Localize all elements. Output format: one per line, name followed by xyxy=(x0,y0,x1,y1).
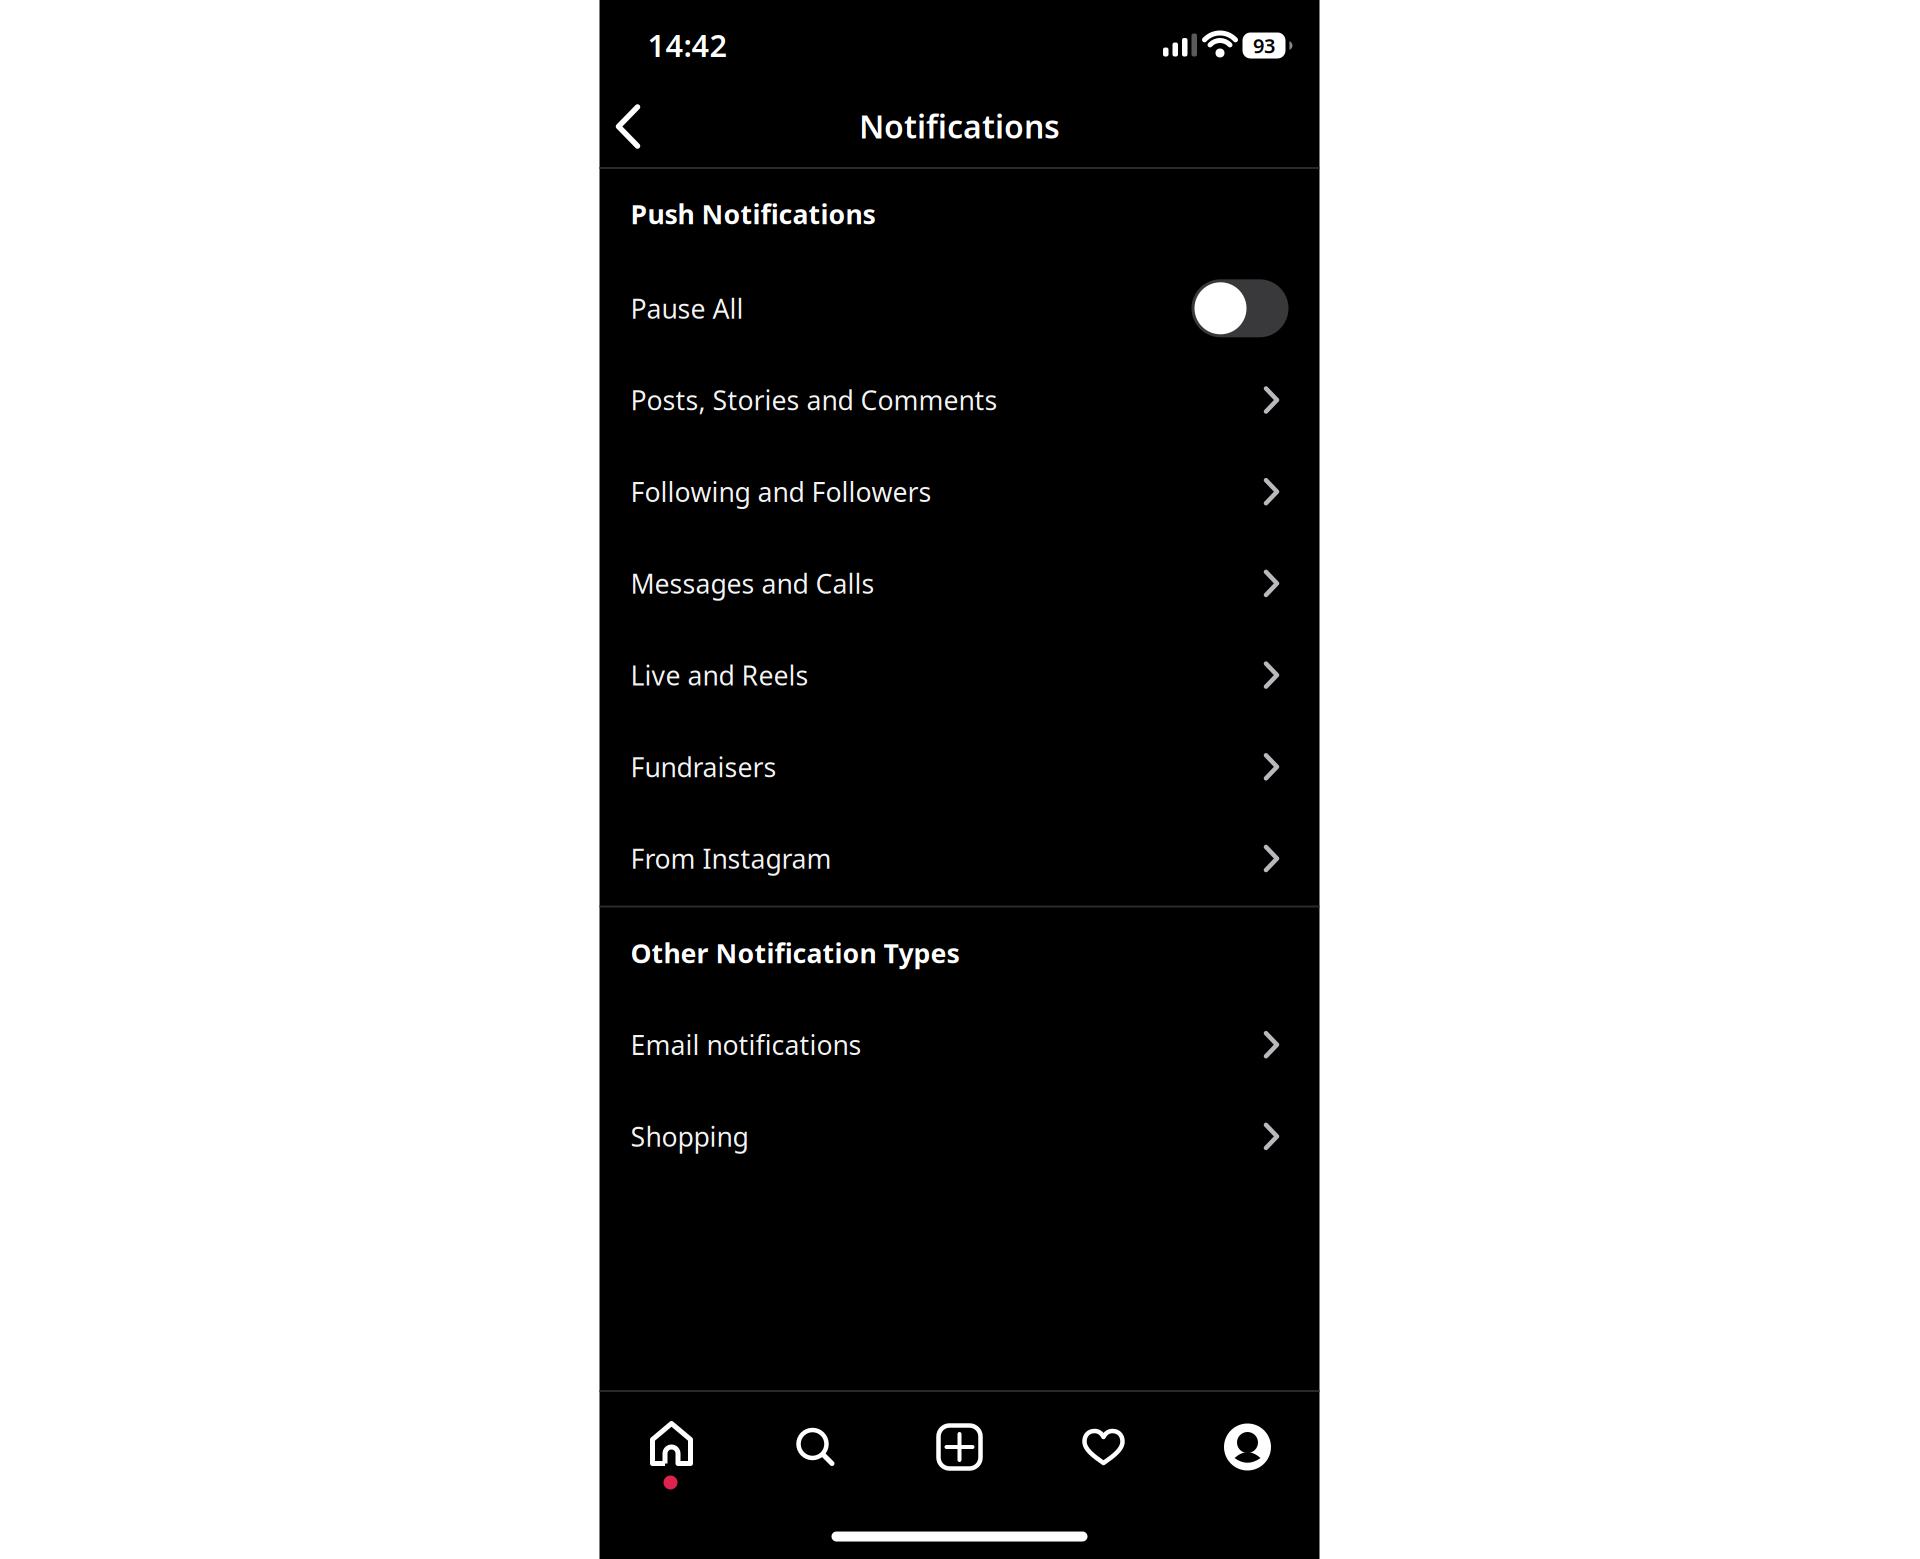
button[interactable]: Shopping xyxy=(599,1091,1319,1182)
staticText: 93 xyxy=(1253,32,1275,59)
button[interactable]: Posts, Stories and Comments xyxy=(599,354,1319,445)
staticText: Live and Reels xyxy=(630,657,808,693)
button[interactable]: Search xyxy=(743,1391,887,1503)
staticText: Messages and Calls xyxy=(630,566,874,601)
staticText: Notifications xyxy=(859,105,1060,147)
button[interactable]: Pause All xyxy=(599,263,1319,354)
button[interactable]: Email notifications xyxy=(599,999,1319,1090)
button[interactable]: Activity xyxy=(1031,1391,1175,1503)
staticText: Pause All xyxy=(630,291,743,326)
staticText: 14:42 xyxy=(647,25,727,65)
button[interactable]: From Instagram xyxy=(599,813,1319,904)
staticText: Push Notifications xyxy=(630,196,875,232)
button[interactable]: Fundraisers xyxy=(599,721,1319,812)
staticText: Posts, Stories and Comments xyxy=(630,382,997,418)
button[interactable]: Back xyxy=(611,85,667,169)
staticText: Other Notification Types xyxy=(630,935,959,971)
button[interactable]: Profile xyxy=(1175,1391,1319,1503)
button[interactable]: Home xyxy=(599,1391,743,1503)
staticText: Fundraisers xyxy=(630,749,776,784)
button[interactable]: Following and Followers xyxy=(599,446,1319,537)
staticText: Following and Followers xyxy=(630,474,931,509)
button[interactable]: Messages and Calls xyxy=(599,538,1319,629)
staticText: From Instagram xyxy=(630,841,831,876)
button[interactable]: New post xyxy=(887,1391,1031,1503)
staticText: Shopping xyxy=(630,1119,748,1154)
staticText: Email notifications xyxy=(630,1027,861,1062)
button[interactable]: Live and Reels xyxy=(599,630,1319,721)
